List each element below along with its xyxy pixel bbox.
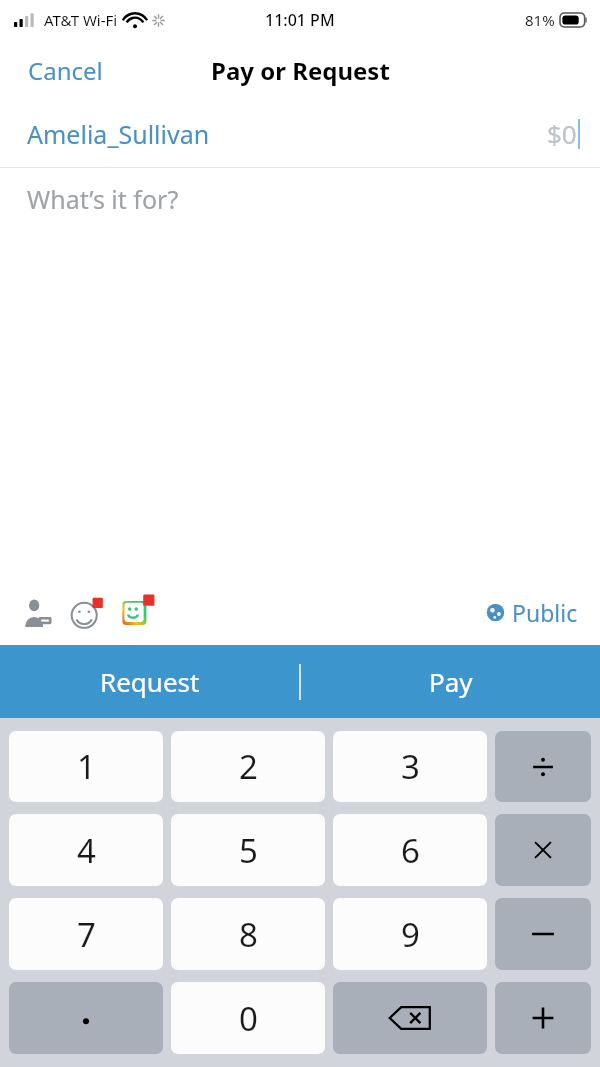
button[interactable]: What’s it for?: [0, 168, 600, 230]
button[interactable]: 9: [333, 898, 487, 970]
button[interactable]: 8: [171, 898, 325, 970]
button[interactable]: Divide: [495, 731, 591, 802]
staticText: 6: [401, 828, 420, 873]
button[interactable]: Minus: [495, 898, 591, 970]
staticText: 9: [401, 912, 420, 957]
staticText: 7: [77, 912, 96, 957]
button[interactable]: 6: [333, 814, 487, 886]
button[interactable]: Multiply: [495, 814, 591, 886]
button[interactable]: Amelia_Sullivan: [0, 100, 600, 167]
button[interactable]: Emoji: [62, 587, 114, 639]
button[interactable]: Decimal point: [9, 982, 163, 1054]
staticText: What’s it for?: [27, 182, 179, 216]
staticText: Public: [512, 597, 578, 628]
button[interactable]: Plus: [495, 982, 591, 1054]
staticText: Request: [100, 664, 200, 699]
staticText: 0: [239, 996, 258, 1041]
staticText: 2: [239, 744, 258, 789]
button[interactable]: Cancel: [0, 44, 131, 97]
button[interactable]: 5: [171, 814, 325, 886]
staticText: AT&T Wi-Fi: [44, 10, 118, 30]
staticText: $0: [547, 116, 577, 151]
staticText: 1: [77, 744, 96, 789]
staticText: 4: [77, 828, 96, 873]
staticText: Amelia_Sullivan: [27, 117, 210, 151]
button[interactable]: 7: [9, 898, 163, 970]
button[interactable]: 4: [9, 814, 163, 886]
button[interactable]: 3: [333, 731, 487, 802]
staticText: 8: [239, 912, 258, 957]
button[interactable]: Request: [0, 645, 299, 718]
button[interactable]: Public: [464, 589, 600, 636]
staticText: Pay: [429, 664, 473, 699]
button[interactable]: Pay: [301, 645, 600, 718]
staticText: 3: [401, 744, 420, 789]
button[interactable]: Backspace: [333, 982, 487, 1054]
staticText: 11:01 PM: [265, 9, 335, 31]
button[interactable]: 2: [171, 731, 325, 802]
staticText: Pay or Request: [211, 54, 390, 87]
staticText: Cancel: [28, 54, 103, 87]
staticText: 5: [239, 828, 258, 873]
button[interactable]: Add person: [14, 589, 62, 637]
staticText: 81%: [525, 10, 555, 30]
button[interactable]: Stickers: [114, 587, 166, 639]
button[interactable]: 0: [171, 982, 325, 1054]
button[interactable]: 1: [9, 731, 163, 802]
